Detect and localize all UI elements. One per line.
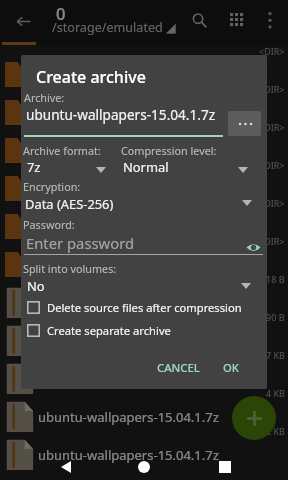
staticText: Delete source files after compression: [47, 300, 242, 315]
staticText: Alarms: [38, 66, 228, 84]
button[interactable]: Music: [0, 245, 288, 283]
staticText: /storage/emulated ◢: [52, 19, 176, 36]
staticText: Archive:: [24, 90, 65, 105]
button[interactable]: OK: [217, 355, 245, 380]
button[interactable]: Create separate archive: [27, 323, 171, 338]
button[interactable]: Back: [8, 6, 38, 36]
staticText: Create archive: [36, 66, 146, 88]
button[interactable]: Recents: [203, 456, 247, 478]
button[interactable]: Alarms: [0, 55, 288, 93]
staticText: 7z: [27, 158, 41, 176]
button[interactable]: New: [232, 396, 276, 440]
staticText: Encryption:: [23, 179, 81, 194]
button[interactable]: Back: [44, 456, 88, 478]
staticText: DCIM: [38, 142, 228, 160]
staticText: Movies: [38, 218, 228, 236]
button[interactable]: Show password: [241, 235, 265, 259]
staticText: ubuntu-wallpapers-15.04.1.7z: [26, 105, 216, 124]
staticText: ubuntu-wallpapers-15.0.7z: [38, 294, 228, 312]
staticText: <DIR>: [259, 83, 285, 95]
button[interactable]: ubuntu-wallpapers-15.0.7z: [0, 283, 288, 321]
staticText: 90 B: [266, 311, 285, 323]
staticText: Normal: [123, 158, 169, 176]
staticText: 4 KB: [266, 387, 285, 399]
staticText: Download: [38, 180, 228, 198]
staticText: No: [27, 277, 45, 295]
button[interactable]: ubuntu-wallpapers-15.04.1.7z: [0, 321, 288, 359]
button[interactable]: Download: [0, 169, 288, 207]
staticText: <DIR>: [259, 45, 285, 57]
button[interactable]: More options: [256, 6, 284, 34]
staticText: <DIR>: [259, 121, 285, 133]
button[interactable]: Android: [0, 93, 288, 131]
button[interactable]: ubuntu-wallpapers-15.0.7z: [0, 359, 288, 397]
button[interactable]: DCIM: [0, 131, 288, 169]
staticText: Android: [38, 104, 228, 122]
staticText: ubuntu-wallpapers-15.04.1.7z: [38, 408, 228, 426]
staticText: <DIR>: [259, 159, 285, 171]
button[interactable]: CANCEL: [151, 355, 206, 380]
staticText: ubuntu-wallpapers-15.04.1.7z: [38, 446, 228, 464]
button[interactable]: Browse: [228, 111, 261, 136]
staticText: Archive format:: [23, 143, 101, 158]
staticText: 7 KB: [266, 349, 285, 361]
staticText: 0: [56, 2, 66, 24]
button[interactable]: ubuntu-wallpapers-15.04.1.7z: [0, 397, 288, 435]
staticText: CANCEL: [157, 360, 200, 375]
staticText: Music: [38, 256, 228, 274]
staticText: Password:: [23, 217, 75, 232]
staticText: Compression level:: [121, 143, 217, 158]
staticText: ubuntu-wallpapers-15.04.1.7z: [38, 332, 228, 350]
staticText: Data (AES-256): [25, 195, 114, 213]
button[interactable]: Home: [122, 456, 166, 478]
staticText: <DIR>: [259, 197, 285, 209]
button[interactable]: Movies: [0, 207, 288, 245]
button[interactable]: View mode: [222, 5, 252, 35]
staticText: ubuntu-wallpapers-15.0.7z: [38, 370, 228, 388]
staticText: 2 KB: [266, 425, 285, 437]
staticText: 18 B: [266, 273, 285, 285]
staticText: Create separate archive: [47, 323, 171, 338]
staticText: Split into volumes:: [23, 261, 117, 276]
staticText: OK: [223, 360, 239, 375]
staticText: Enter password: [26, 233, 135, 253]
button[interactable]: Search: [184, 5, 214, 35]
staticText: <DIR>: [259, 235, 285, 247]
button[interactable]: Delete source files after compression: [27, 300, 242, 315]
button[interactable]: ubuntu-wallpapers-15.04.1.7z: [0, 435, 288, 473]
